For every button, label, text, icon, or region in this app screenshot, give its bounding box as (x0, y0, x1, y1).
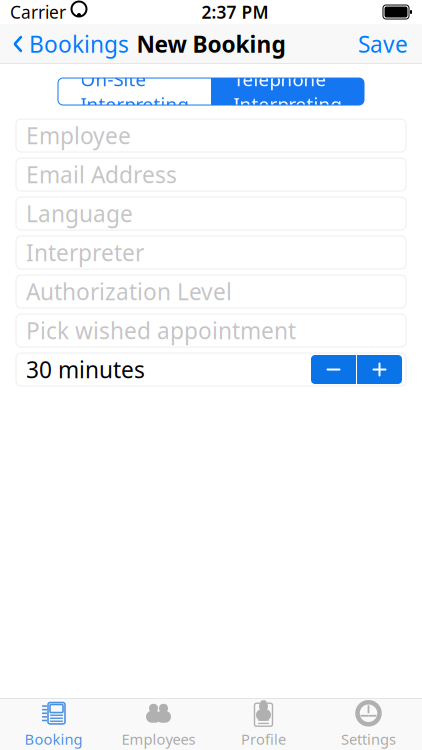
staticText: 2:37 PM (201, 0, 268, 23)
staticText: Employee (26, 120, 131, 150)
staticText: Telephone Interpreting (233, 67, 341, 116)
staticText: New Booking (136, 29, 285, 59)
staticText: Save (358, 29, 408, 59)
staticText: Bookings (29, 29, 129, 59)
staticText: On-Site Interpreting (80, 67, 188, 116)
button[interactable]: Bookings (0, 21, 141, 67)
button[interactable]: Language (16, 197, 406, 230)
button[interactable]: Decrease duration (311, 355, 356, 384)
staticText: Language (26, 198, 133, 228)
button[interactable]: Employees (106, 698, 211, 750)
button[interactable]: Increase duration (357, 355, 402, 384)
staticText: Booking (24, 729, 82, 749)
button[interactable]: Booking (1, 698, 106, 750)
staticText: Email Address (26, 159, 177, 189)
staticText: Pick wished appointment (26, 315, 296, 345)
button[interactable]: Pick wished appointment (16, 314, 406, 347)
staticText: Employees (121, 729, 195, 749)
button[interactable]: Settings (316, 698, 421, 750)
button[interactable]: Interpreter (16, 236, 406, 269)
button[interactable]: Authorization Level (16, 275, 406, 308)
staticText: Profile (241, 729, 286, 749)
staticText: Carrier (10, 0, 66, 23)
staticText: Settings (341, 729, 396, 749)
button[interactable]: Employee (16, 119, 406, 152)
button[interactable]: On-Site Interpreting (58, 78, 211, 105)
staticText: 30 minutes (26, 354, 145, 384)
button[interactable]: Profile (211, 698, 316, 750)
button[interactable]: Telephone Interpreting (211, 78, 364, 105)
staticText: Interpreter (26, 237, 144, 267)
staticText: Authorization Level (26, 276, 232, 306)
button[interactable]: Email Address (16, 158, 406, 191)
button[interactable]: Save (344, 21, 422, 67)
